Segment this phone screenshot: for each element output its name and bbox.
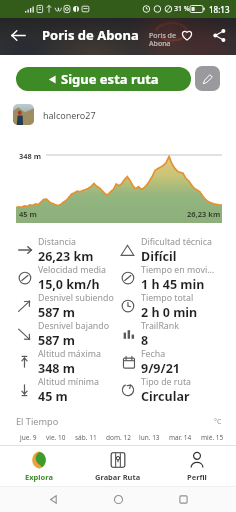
button[interactable]: Tiempo total bbox=[119, 292, 223, 320]
button[interactable]: Fecha bbox=[119, 348, 223, 376]
staticText: Fecha bbox=[141, 348, 166, 360]
button[interactable]: Perfil bbox=[157, 446, 236, 486]
staticText: 587 m bbox=[38, 304, 75, 320]
staticText: Dificultad técnica bbox=[141, 236, 212, 248]
staticText: Velocidad media bbox=[38, 264, 106, 276]
button[interactable]: Tiempo en movi… bbox=[119, 264, 223, 292]
button[interactable]: TrailRank bbox=[119, 320, 223, 348]
staticText: El Tiempo bbox=[16, 415, 59, 428]
button[interactable]: Altitud máxima bbox=[16, 348, 119, 376]
staticText: Explora bbox=[25, 472, 53, 482]
staticText: halconero27 bbox=[43, 109, 96, 121]
staticText: Desnivel bajando bbox=[38, 320, 110, 332]
button[interactable]: halconero27 bbox=[13, 104, 236, 125]
staticText: Grabar Ruta bbox=[95, 472, 141, 482]
button[interactable]: Edit bbox=[195, 66, 220, 91]
staticText: Perfil bbox=[187, 472, 207, 482]
staticText: mar. 14 bbox=[169, 433, 192, 442]
button[interactable]: Desnivel subiendo bbox=[16, 292, 119, 320]
staticText: 45 m bbox=[19, 209, 37, 219]
staticText: °C bbox=[214, 417, 222, 427]
staticText: 348 m bbox=[19, 151, 42, 161]
button[interactable]: Back bbox=[6, 23, 30, 47]
button[interactable]: Sigue esta ruta bbox=[16, 67, 191, 91]
staticText: Tipo de ruta bbox=[141, 376, 192, 388]
staticText: jue. 9 bbox=[20, 433, 37, 442]
staticText: 587 m bbox=[38, 332, 75, 348]
staticText: 26,23 km bbox=[187, 209, 221, 219]
staticText: 8 bbox=[141, 332, 149, 348]
button[interactable]: Dificultad técnica bbox=[119, 236, 223, 264]
button[interactable]: Velocidad media bbox=[16, 264, 119, 292]
staticText: mié. 15 bbox=[201, 433, 224, 442]
button[interactable]: Recents bbox=[174, 490, 192, 508]
staticText: 31 % bbox=[174, 4, 190, 14]
staticText: sáb. 11 bbox=[75, 433, 97, 442]
button[interactable]: Back bbox=[44, 490, 62, 508]
staticText: 18:13 bbox=[209, 4, 230, 15]
staticText: 348 m bbox=[38, 360, 75, 376]
staticText: Tiempo en movi… bbox=[141, 264, 215, 276]
staticText: Altitud máxima bbox=[38, 348, 101, 360]
staticText: dom. 12 bbox=[106, 433, 131, 442]
button[interactable]: Distancia bbox=[16, 236, 119, 264]
staticText: vie. 10 bbox=[46, 433, 66, 442]
button[interactable]: Share bbox=[207, 23, 231, 47]
staticText: 26,23 km bbox=[38, 248, 94, 264]
staticText: Poris de Abona bbox=[42, 26, 139, 44]
staticText: Desnivel subiendo bbox=[38, 292, 114, 304]
staticText: Difícil bbox=[141, 248, 177, 264]
button[interactable]: Desnivel bajando bbox=[16, 320, 119, 348]
staticText: 1 h 45 min bbox=[141, 276, 205, 292]
staticText: Altitud mínima bbox=[38, 376, 100, 388]
staticText: Distancia bbox=[38, 236, 76, 248]
button[interactable]: Favorite bbox=[175, 23, 199, 47]
staticText: Circular bbox=[141, 388, 190, 404]
button[interactable]: Grabar Ruta bbox=[78, 446, 157, 486]
staticText: TrailRank bbox=[141, 320, 179, 332]
button[interactable]: Home bbox=[109, 490, 127, 508]
staticText: lun. 13 bbox=[139, 433, 160, 442]
staticText: Tiempo total bbox=[141, 292, 194, 304]
staticText: 9/9/21 bbox=[141, 360, 180, 376]
staticText: 15,0 km/h bbox=[38, 276, 100, 292]
staticText: Sigue esta ruta bbox=[61, 70, 159, 88]
button[interactable]: Explora bbox=[0, 446, 78, 486]
staticText: 2 h 0 min bbox=[141, 304, 198, 320]
staticText: Poris de Abona bbox=[149, 31, 176, 48]
button[interactable]: Altitud mínima bbox=[16, 376, 119, 404]
staticText: 45 m bbox=[38, 388, 68, 404]
button[interactable]: Tipo de ruta bbox=[119, 376, 223, 404]
